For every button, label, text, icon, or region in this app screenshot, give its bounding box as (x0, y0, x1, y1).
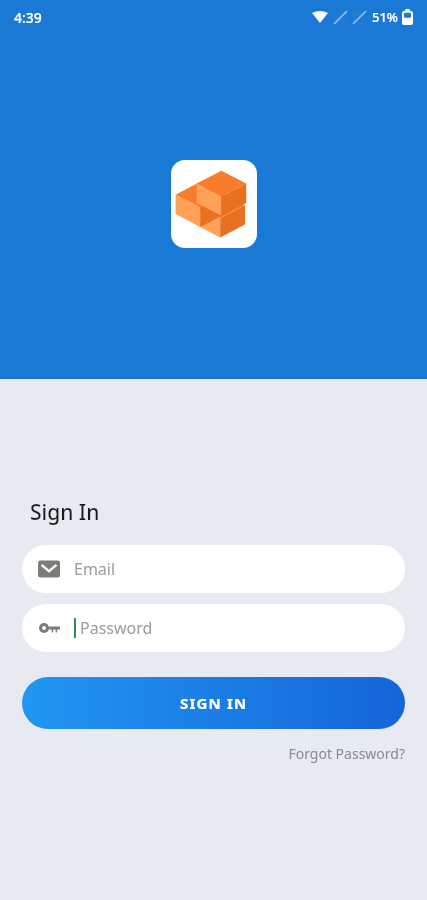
staticText: Password (80, 617, 153, 639)
staticText: SIGN IN (180, 693, 248, 713)
staticText: Sign In (30, 498, 100, 527)
button[interactable]: SIGN IN (22, 677, 405, 729)
staticText: 51% (372, 8, 398, 26)
button[interactable]: Email (22, 545, 405, 593)
button[interactable]: Forgot Password? (288, 740, 405, 767)
button[interactable]: Password (22, 604, 405, 652)
staticText: 4:39 (14, 8, 42, 27)
staticText: Email (74, 558, 116, 580)
